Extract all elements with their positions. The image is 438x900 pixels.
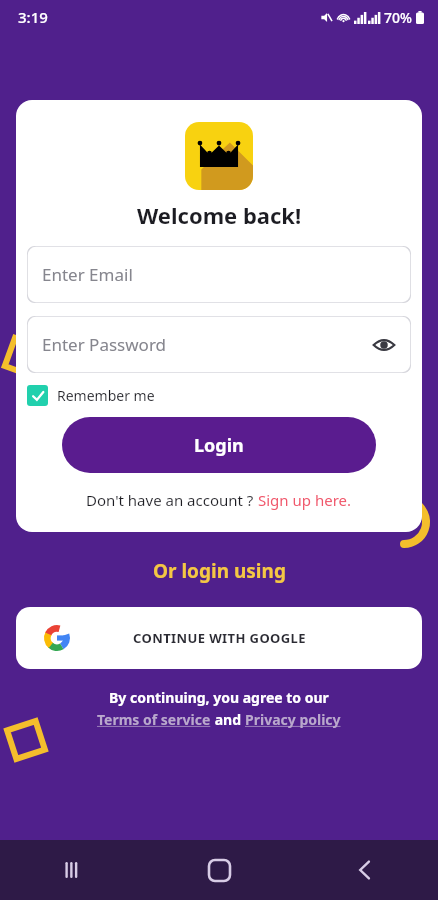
staticText: Enter Password <box>42 333 167 356</box>
staticText: Login <box>194 433 244 458</box>
button[interactable]: Sign up here. <box>258 490 352 510</box>
staticText: Welcome back! <box>137 200 302 230</box>
staticText: Sign up here. <box>258 490 352 510</box>
button[interactable]: Terms of service <box>97 710 211 729</box>
staticText: CONTINUE WITH GOOGLE <box>133 629 306 647</box>
button[interactable]: Remember me <box>27 385 155 406</box>
staticText: Terms of service <box>97 710 211 729</box>
staticText: By continuing, you agree to our <box>109 688 329 707</box>
staticText: Enter Email <box>42 263 133 286</box>
button[interactable]: Recents <box>0 840 146 900</box>
staticText: 3:19 <box>18 7 48 27</box>
button[interactable]: Enter Email <box>27 246 411 303</box>
button[interactable]: Privacy policy <box>245 710 341 729</box>
staticText: 70% <box>384 8 412 27</box>
button[interactable]: Home <box>146 840 292 900</box>
button[interactable]: Show password <box>367 328 401 362</box>
staticText: Don't have an account ? <box>86 490 258 510</box>
button[interactable]: Enter Password <box>27 316 411 373</box>
staticText: and <box>211 710 245 729</box>
button[interactable]: Back <box>292 840 438 900</box>
staticText: Or login using <box>153 558 286 584</box>
staticText: Privacy policy <box>245 710 341 729</box>
button[interactable]: Login <box>62 417 376 473</box>
staticText: Remember me <box>57 386 155 405</box>
button[interactable]: CONTINUE WITH GOOGLE <box>16 607 422 669</box>
